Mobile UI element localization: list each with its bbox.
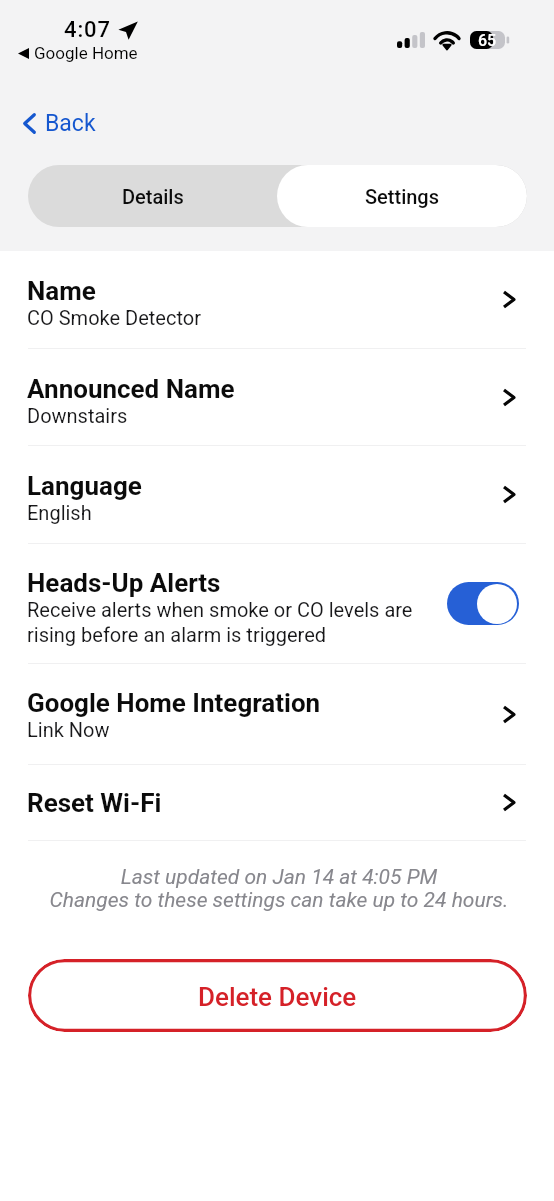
staticText: Announced Name [27,374,235,404]
staticText: English [27,501,92,524]
button[interactable]: Heads-Up Alerts toggle [447,582,519,625]
staticText: 4:07 [64,17,111,43]
button[interactable]: Announced Name [0,349,554,445]
staticText: Google Home Integration [27,688,321,718]
button[interactable]: Reset Wi-Fi [0,765,554,840]
staticText: Settings [365,185,440,208]
button[interactable]: Delete Device [28,959,527,1032]
staticText: Receive alerts when smoke or CO levels a… [27,598,444,647]
staticText: Delete Device [198,982,357,1012]
button[interactable]: Heads-Up Alerts [0,544,554,663]
button[interactable]: Back [17,105,102,142]
button[interactable]: Name [0,251,554,348]
staticText: Details [122,185,184,208]
staticText: CO Smoke Detector [27,306,201,329]
button[interactable]: Settings [277,165,527,227]
staticText: Back [45,110,96,137]
staticText: Google Home [34,43,138,63]
staticText: Name [27,276,96,306]
staticText: Downstairs [27,404,128,427]
button[interactable]: Google Home Integration [0,664,554,764]
staticText: Heads-Up Alerts [27,568,221,598]
staticText: Link Now [27,718,110,741]
staticText: Language [27,471,142,501]
button[interactable]: Language [0,446,554,543]
staticText: Last updated on Jan 14 at 4:05 PM Change… [20,865,538,912]
staticText: Reset Wi-Fi [27,788,162,818]
staticText: 65 [478,31,497,49]
button[interactable]: Details [28,165,277,227]
